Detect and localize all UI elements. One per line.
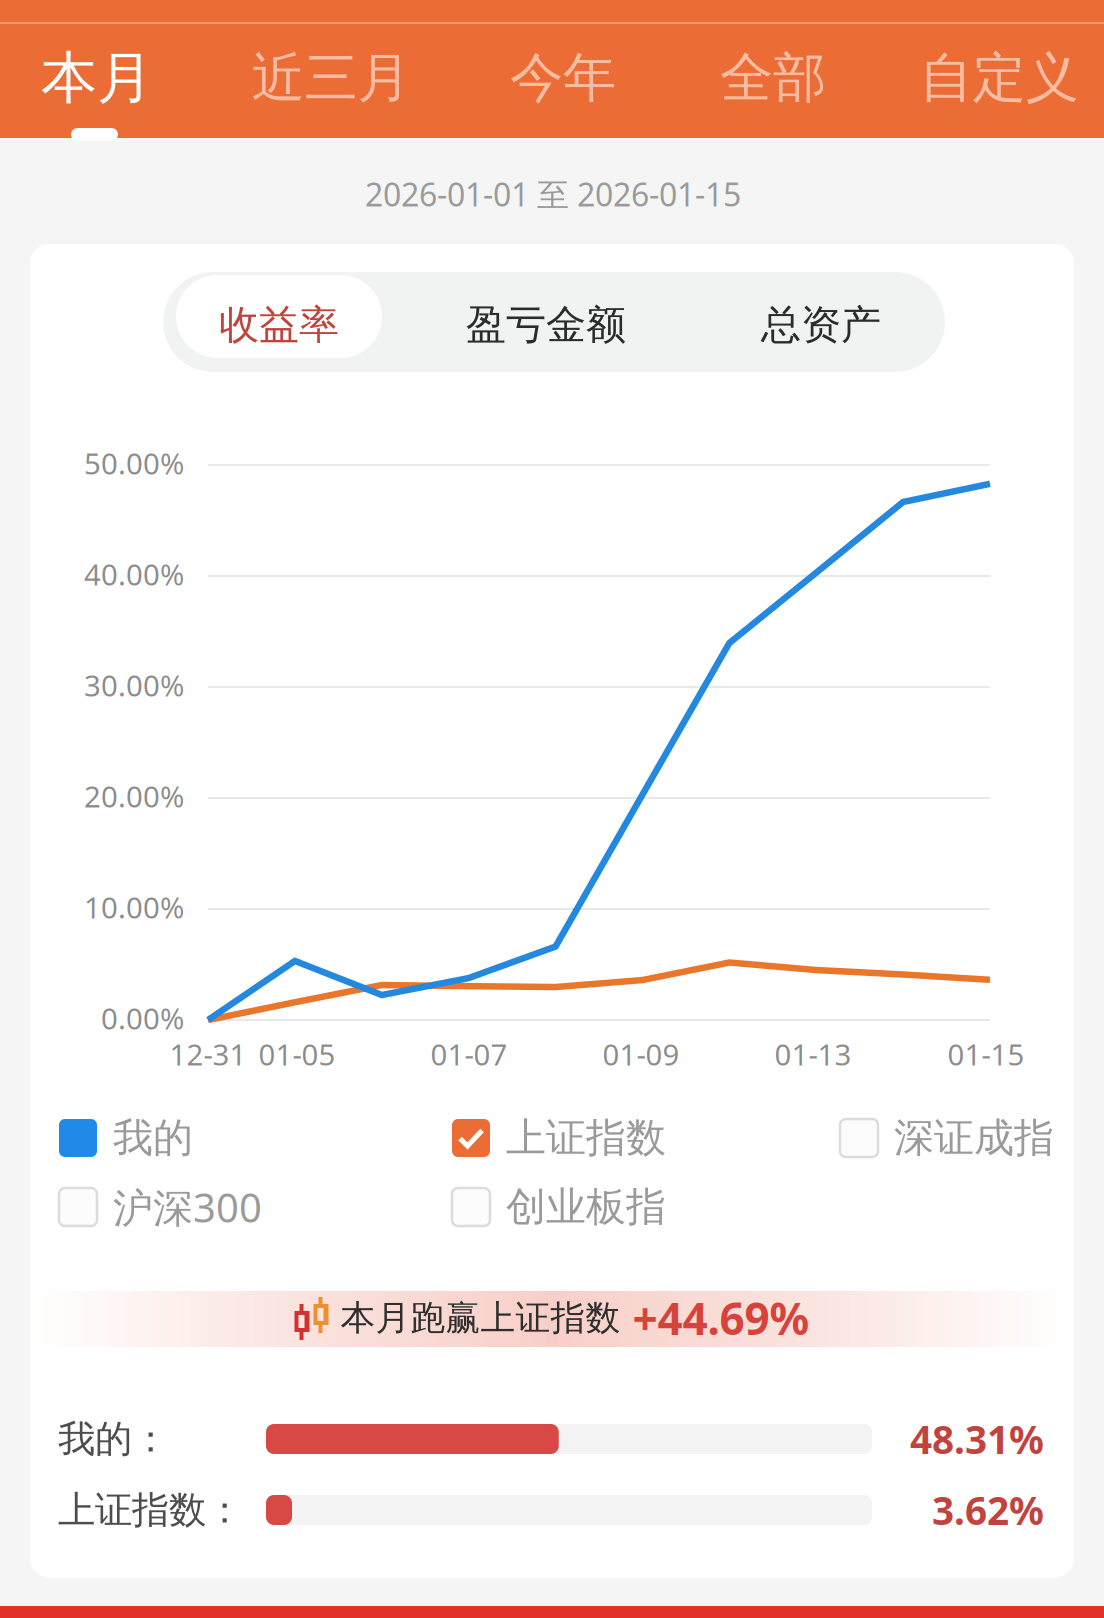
staticText: 我的： [58, 1416, 169, 1462]
staticText: 总资产 [761, 300, 881, 349]
button[interactable]: 自定义 [889, 10, 1104, 146]
staticText: 2026-01-01 至 2026-01-15 [365, 173, 741, 215]
button[interactable]: 本月 [0, 10, 207, 146]
staticText: 深证成指 [894, 1113, 1054, 1162]
button[interactable]: 收益率 [176, 284, 382, 366]
staticText: 我的 [113, 1113, 193, 1162]
staticText: 01-15 [947, 1034, 1024, 1073]
button[interactable]: 全部 [663, 10, 883, 146]
staticText: 上证指数： [58, 1487, 243, 1533]
staticText: 收益率 [219, 300, 339, 349]
staticText: 50.00% [84, 443, 184, 482]
staticText: 盈亏金额 [466, 300, 626, 349]
staticText: 01-09 [602, 1034, 679, 1073]
button[interactable]: 近三月 [221, 10, 441, 146]
staticText: 12-31 [169, 1034, 246, 1073]
button[interactable]: 深证成指 [840, 1112, 1054, 1164]
staticText: 本月跑赢上证指数 [340, 1297, 620, 1339]
button[interactable]: 总资产 [711, 284, 931, 366]
button[interactable]: 今年 [453, 10, 673, 146]
staticText: 20.00% [84, 776, 184, 815]
staticText: 上证指数 [506, 1113, 666, 1162]
button[interactable]: 创业板指 [452, 1181, 666, 1233]
staticText: +44.69% [632, 1289, 809, 1347]
button[interactable]: 上证指数 [452, 1112, 666, 1164]
staticText: 10.00% [84, 887, 184, 926]
staticText: 30.00% [84, 665, 184, 704]
staticText: 01-05 [258, 1034, 335, 1073]
staticText: 3.62% [932, 1484, 1044, 1536]
staticText: 48.31% [910, 1413, 1044, 1465]
staticText: 近三月 [251, 45, 410, 111]
staticText: 0.00% [101, 998, 184, 1037]
staticText: 01-13 [774, 1034, 851, 1073]
button[interactable]: 沪深300 [59, 1181, 262, 1233]
staticText: 本月 [41, 44, 153, 112]
staticText: 全部 [720, 45, 826, 111]
staticText: 自定义 [919, 45, 1078, 111]
staticText: 40.00% [84, 554, 184, 593]
staticText: 01-07 [430, 1034, 507, 1073]
button[interactable]: 盈亏金额 [421, 284, 671, 366]
staticText: 沪深300 [113, 1180, 262, 1233]
button[interactable]: 我的 [59, 1112, 193, 1164]
staticText: 今年 [510, 45, 616, 111]
staticText: 创业板指 [506, 1182, 666, 1231]
